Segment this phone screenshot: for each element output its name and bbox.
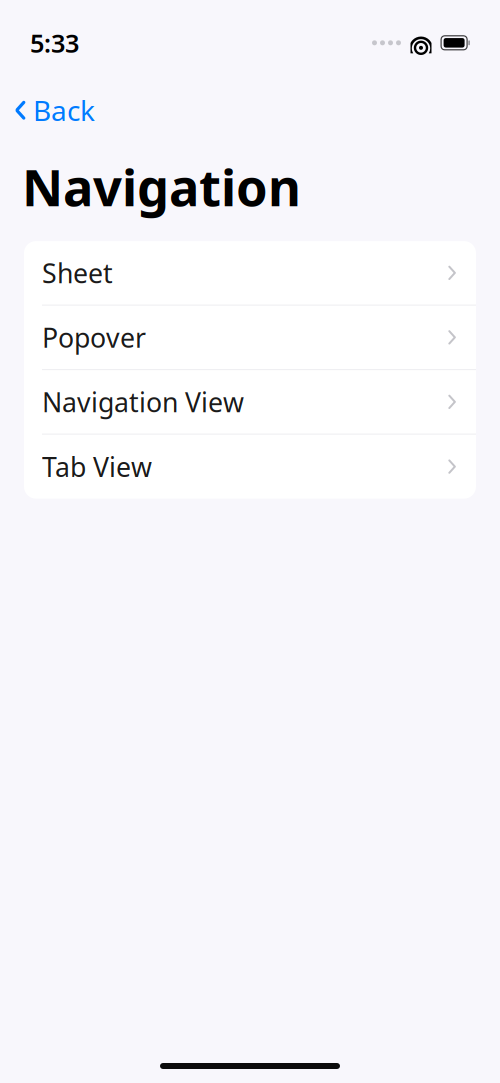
staticText: Tab View <box>42 449 152 484</box>
staticText: Navigation View <box>42 384 244 420</box>
staticText: Popover <box>42 320 146 355</box>
staticText: Back <box>33 92 95 129</box>
button[interactable]: Sheet <box>24 241 476 306</box>
staticText: 5:33 <box>30 26 79 60</box>
staticText: Navigation <box>22 153 301 220</box>
staticText: Sheet <box>42 255 113 291</box>
button[interactable]: Navigation View <box>24 370 476 435</box>
button[interactable]: Back <box>0 86 105 135</box>
button[interactable]: Tab View <box>24 435 476 499</box>
button[interactable]: Popover <box>24 306 476 370</box>
